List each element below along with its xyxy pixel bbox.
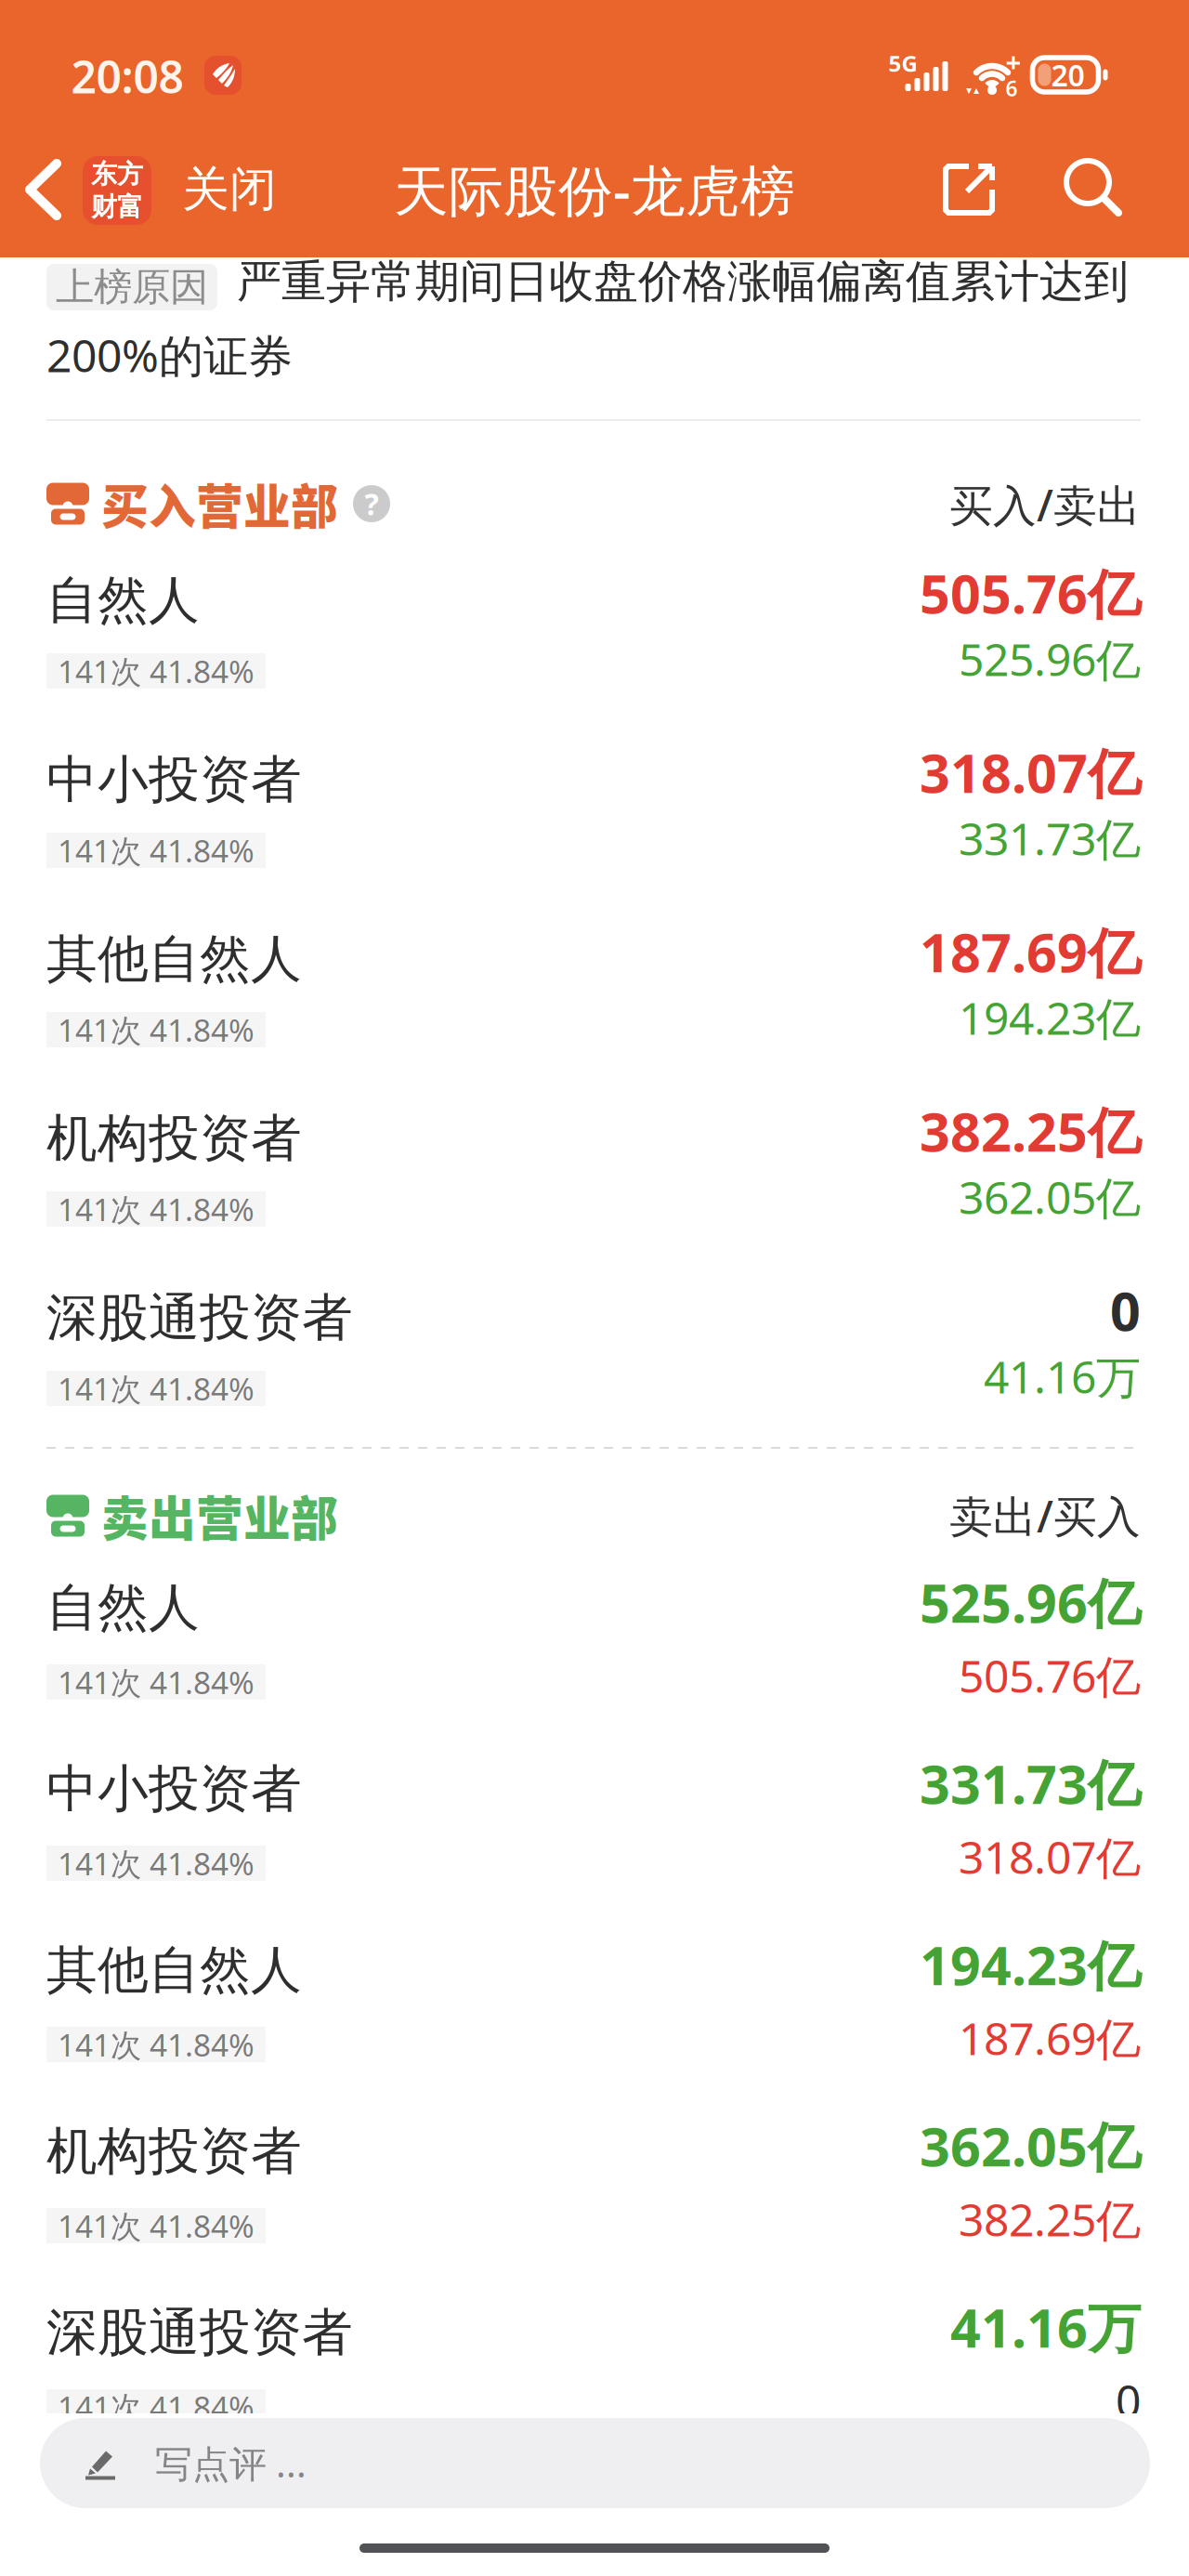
staticText: 5G [888, 48, 917, 78]
staticText: 141次 41.84% [58, 2024, 255, 2065]
staticText: 318.07亿 [920, 737, 1141, 808]
staticText: 362.05亿 [920, 2110, 1141, 2181]
staticText: 20 [1051, 55, 1084, 95]
button[interactable]: Help [353, 484, 390, 523]
staticText: 331.73亿 [959, 809, 1141, 868]
staticText: 141次 41.84% [58, 830, 255, 871]
staticText: 141次 41.84% [58, 1368, 255, 1409]
staticText: 187.69亿 [920, 916, 1141, 987]
button[interactable]: Back [25, 159, 62, 220]
staticText: 自然人 [46, 569, 200, 631]
staticText: 0 [1110, 1275, 1141, 1346]
staticText: 141次 41.84% [58, 1009, 255, 1050]
staticText: 上榜原因 [56, 264, 208, 311]
staticText: 关闭 [182, 161, 277, 218]
staticText: 机构投资者 [46, 1107, 302, 1170]
staticText: 362.05亿 [959, 1167, 1141, 1226]
staticText: 525.96亿 [920, 1567, 1141, 1637]
button[interactable]: 关闭 [182, 161, 277, 218]
staticText: 141次 41.84% [58, 650, 255, 692]
button[interactable]: Search [1066, 161, 1122, 217]
staticText: 中小投资者 [46, 1758, 302, 1820]
staticText: 194.23亿 [920, 1929, 1141, 2000]
staticText: 200%的证券 [46, 325, 293, 385]
staticText: 其他自然人 [46, 928, 302, 990]
staticText: 505.76亿 [959, 1646, 1141, 1705]
staticText: + [1006, 43, 1021, 79]
staticText: ? [365, 484, 379, 523]
staticText: 东方 [91, 158, 143, 190]
staticText: 187.69亿 [959, 2008, 1141, 2067]
staticText: 深股通投资者 [46, 1287, 353, 1349]
staticText: 20:08 [71, 47, 183, 106]
staticText: 0 [1116, 2371, 1141, 2430]
button[interactable]: Share [943, 164, 995, 216]
staticText: 6 [1006, 74, 1018, 102]
button[interactable]: 写点评 [40, 2418, 1150, 2508]
staticText: 141次 41.84% [58, 1661, 255, 1703]
button[interactable]: 东方财富 East Money [83, 156, 151, 225]
staticText: 141次 41.84% [58, 1843, 255, 1884]
staticText: 买入营业部 [101, 470, 338, 538]
staticText: 严重异常期间日收盘价格涨幅偏离值累计达到 [237, 254, 1129, 309]
staticText: 自然人 [46, 1576, 200, 1639]
staticText: 382.25亿 [920, 1096, 1141, 1166]
staticText: 财富 [91, 191, 143, 223]
staticText: 买入/卖出 [949, 476, 1141, 533]
staticText: 194.23亿 [959, 988, 1141, 1047]
staticText: 41.16万 [950, 2292, 1141, 2362]
staticText: 其他自然人 [46, 1939, 302, 2001]
staticText: 写点评 ... [155, 2438, 307, 2488]
staticText: 505.76亿 [920, 557, 1141, 628]
staticText: 中小投资者 [46, 748, 302, 811]
staticText: 525.96亿 [959, 629, 1141, 688]
staticText: 卖出/买入 [949, 1487, 1141, 1544]
staticText: 41.16万 [984, 1347, 1141, 1406]
staticText: 141次 41.84% [58, 1188, 255, 1230]
staticText: 天际股份-龙虎榜 [394, 153, 795, 226]
staticText: 318.07亿 [959, 1827, 1141, 1886]
staticText: 深股通投资者 [46, 2301, 353, 2364]
staticText: 机构投资者 [46, 2120, 302, 2182]
staticText: 141次 41.84% [58, 2386, 255, 2427]
staticText: 卖出营业部 [101, 1482, 338, 1550]
staticText: 331.73亿 [920, 1748, 1141, 1819]
staticText: 382.25亿 [959, 2190, 1141, 2249]
staticText: 141次 41.84% [58, 2205, 255, 2246]
